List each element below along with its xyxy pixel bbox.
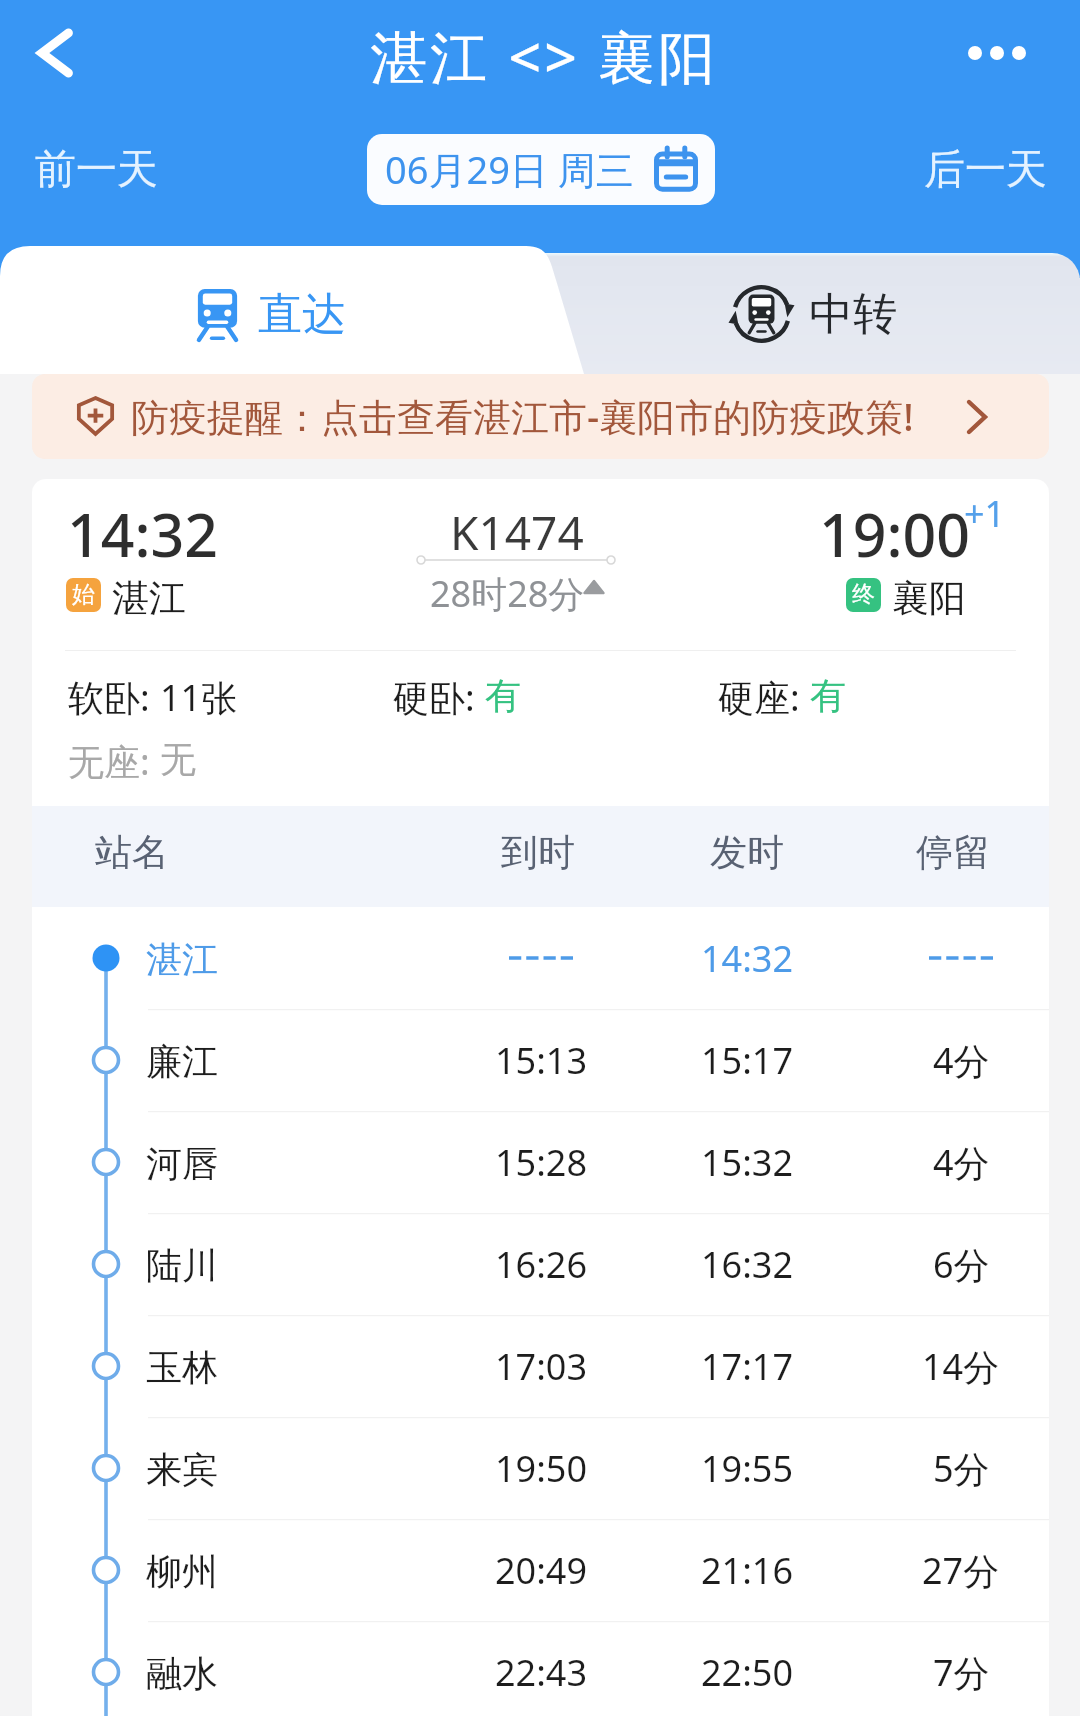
staticText: 17:03 bbox=[495, 1342, 588, 1391]
staticText: 19:00 bbox=[819, 494, 971, 574]
staticText: 15:32 bbox=[701, 1138, 794, 1187]
staticText: 有 bbox=[810, 673, 846, 718]
button[interactable]: 防疫提醒：点击查看湛江市-襄阳市的防疫政策! bbox=[32, 374, 1049, 459]
staticText: 19:55 bbox=[701, 1444, 794, 1493]
staticText: 14:32 bbox=[701, 934, 794, 983]
staticText: 16:32 bbox=[701, 1240, 794, 1289]
button[interactable]: 陆川 bbox=[32, 1213, 1049, 1315]
button[interactable]: 玉林 bbox=[32, 1315, 1049, 1417]
staticText: 前一天 bbox=[35, 144, 158, 196]
button[interactable]: 河唇 bbox=[32, 1111, 1049, 1213]
staticText: 陆川 bbox=[146, 1243, 218, 1288]
staticText: 终 bbox=[852, 580, 875, 609]
button[interactable]: 中转 bbox=[480, 253, 1080, 374]
staticText: 6分 bbox=[933, 1240, 990, 1289]
staticText: 11张 bbox=[160, 673, 238, 722]
staticText: 无 bbox=[160, 737, 196, 782]
button[interactable]: 来宾 bbox=[32, 1417, 1049, 1519]
staticText: 27分 bbox=[922, 1546, 1000, 1595]
staticText: 20:49 bbox=[495, 1546, 588, 1595]
staticText: 15:17 bbox=[701, 1036, 794, 1085]
staticText: 到时 bbox=[501, 829, 575, 876]
button[interactable]: 融水 bbox=[32, 1621, 1049, 1716]
staticText: 融水 bbox=[146, 1651, 218, 1696]
staticText: 28时28分 bbox=[430, 569, 585, 618]
staticText: 河唇 bbox=[146, 1141, 218, 1186]
button[interactable]: 后一天 bbox=[924, 144, 1047, 196]
staticText: 始 bbox=[72, 580, 95, 609]
button[interactable]: More options bbox=[951, 7, 1043, 99]
staticText: 15:28 bbox=[495, 1138, 588, 1187]
staticText: 5分 bbox=[933, 1444, 990, 1493]
staticText: 有 bbox=[485, 673, 521, 718]
staticText: +1 bbox=[964, 489, 1006, 538]
staticText: 19:50 bbox=[495, 1444, 588, 1493]
staticText: 湛江 <> 襄阳 bbox=[370, 17, 719, 95]
staticText: 4分 bbox=[933, 1036, 990, 1085]
staticText: 7分 bbox=[933, 1648, 990, 1697]
staticText: 湛江 bbox=[146, 937, 218, 982]
staticText: 06月29日 周三 bbox=[385, 143, 634, 195]
staticText: 玉林 bbox=[146, 1345, 218, 1390]
staticText: 4分 bbox=[933, 1138, 990, 1187]
staticText: 22:43 bbox=[495, 1648, 588, 1697]
staticText: 发时 bbox=[710, 829, 784, 876]
staticText: 来宾 bbox=[146, 1447, 218, 1492]
staticText: 襄阳 bbox=[892, 575, 966, 622]
staticText: 停留 bbox=[916, 829, 990, 876]
staticText: 中转 bbox=[809, 287, 897, 342]
staticText: 17:17 bbox=[701, 1342, 794, 1391]
staticText: 21:16 bbox=[701, 1546, 794, 1595]
button[interactable]: 廉江 bbox=[32, 1009, 1049, 1111]
staticText: 16:26 bbox=[495, 1240, 588, 1289]
staticText: K1474 bbox=[450, 501, 584, 564]
button[interactable]: 湛江 bbox=[32, 907, 1049, 1009]
staticText: 湛江 bbox=[112, 575, 186, 622]
staticText: 柳州 bbox=[146, 1549, 218, 1594]
staticText: 廉江 bbox=[146, 1039, 218, 1084]
staticText: 硬座: bbox=[718, 673, 810, 722]
button[interactable]: 06月29日 周三 bbox=[367, 134, 715, 205]
staticText: 后一天 bbox=[924, 144, 1047, 196]
staticText: 站名 bbox=[95, 829, 169, 876]
staticText: 防疫提醒：点击查看湛江市-襄阳市的防疫政策! bbox=[131, 390, 914, 442]
button[interactable]: Back bbox=[8, 7, 100, 99]
staticText: 14:32 bbox=[67, 494, 219, 574]
staticText: 15:13 bbox=[495, 1036, 588, 1085]
staticText: 14分 bbox=[922, 1342, 1000, 1391]
staticText: 硬卧: bbox=[393, 673, 485, 722]
staticText: 软卧: bbox=[68, 673, 160, 722]
button[interactable]: 直达 bbox=[0, 246, 586, 374]
staticText: 直达 bbox=[258, 287, 346, 342]
button[interactable]: 柳州 bbox=[32, 1519, 1049, 1621]
button[interactable]: 前一天 bbox=[35, 144, 158, 196]
staticText: 22:50 bbox=[701, 1648, 794, 1697]
staticText: 无座: bbox=[68, 737, 160, 786]
